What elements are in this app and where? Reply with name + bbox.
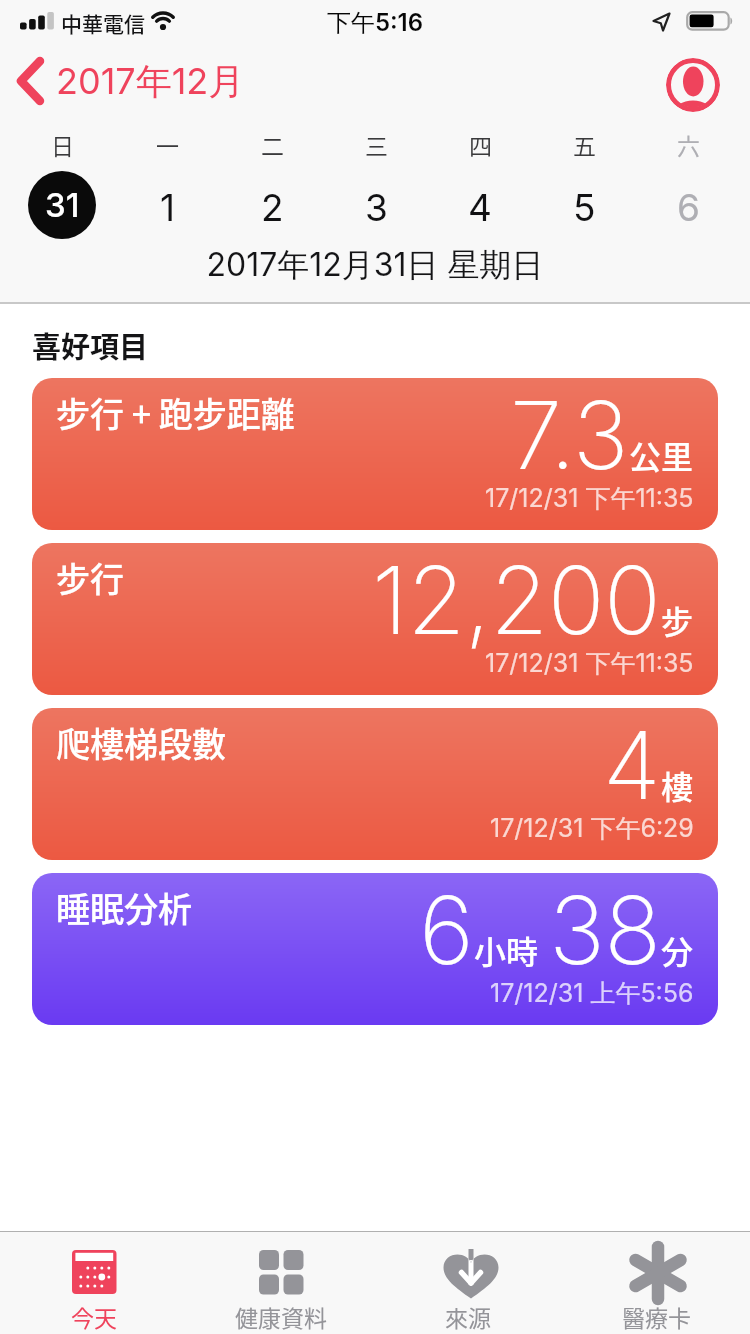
staticText: 四 xyxy=(469,128,492,161)
staticText: 31 xyxy=(45,185,80,225)
staticText: 步 xyxy=(661,597,694,643)
staticText: 17/12/31 下午6:29 xyxy=(490,813,694,845)
staticText: 公里 xyxy=(629,432,694,478)
button[interactable]: 31 xyxy=(28,171,96,239)
staticText: 六 xyxy=(677,128,700,161)
staticText: 分 xyxy=(661,927,694,973)
staticText: 五 xyxy=(573,128,596,161)
button[interactable]: 今天 xyxy=(0,1232,187,1334)
staticText: 6 xyxy=(419,873,474,987)
staticText: 6 xyxy=(677,185,700,230)
button[interactable]: 步行 + 跑步距離 xyxy=(32,378,718,530)
button[interactable] xyxy=(666,58,720,112)
staticText: 12,200 xyxy=(372,543,661,657)
staticText: 下午5:16 xyxy=(0,8,750,38)
staticText: 4 xyxy=(603,708,661,822)
staticText: 38 xyxy=(549,873,661,987)
staticText: 2017年12月 xyxy=(56,59,245,105)
staticText: 步行 + 跑步距離 xyxy=(56,388,295,437)
staticText: 樓 xyxy=(661,762,694,808)
button[interactable]: 爬樓梯段數 xyxy=(32,708,718,860)
staticText: 喜好項目 xyxy=(32,324,149,366)
button[interactable]: 來源 xyxy=(374,1232,562,1334)
button[interactable]: 步行 xyxy=(32,543,718,695)
staticText: 今天 xyxy=(71,1300,117,1333)
staticText: 三 xyxy=(365,128,388,161)
staticText: 3 xyxy=(365,185,388,230)
staticText: 2 xyxy=(261,185,284,230)
staticText: 睡眠分析 xyxy=(56,883,192,932)
button[interactable]: 2017年12月 xyxy=(14,44,245,120)
staticText: 日 xyxy=(51,128,74,161)
staticText: 步行 xyxy=(56,553,124,602)
staticText: 5 xyxy=(573,185,596,230)
staticText: 小時 xyxy=(474,927,539,973)
staticText: 7.3 xyxy=(510,378,629,492)
staticText: 來源 xyxy=(445,1300,491,1333)
staticText: 中華電信 xyxy=(61,8,145,38)
button[interactable]: 睡眠分析 xyxy=(32,873,718,1025)
staticText: 二 xyxy=(261,128,284,161)
staticText: 一 xyxy=(156,128,179,161)
staticText: 4 xyxy=(468,185,492,230)
staticText: 2017年12月31日 星期日 xyxy=(0,245,750,286)
button[interactable]: 健康資料 xyxy=(187,1232,374,1334)
staticText: 健康資料 xyxy=(235,1300,327,1333)
staticText: 17/12/31 上午5:56 xyxy=(490,978,694,1010)
staticText: 醫療卡 xyxy=(622,1300,691,1333)
staticText: 爬樓梯段數 xyxy=(56,718,226,767)
staticText: 1 xyxy=(160,185,176,230)
button[interactable]: 醫療卡 xyxy=(562,1232,750,1334)
staticText: 17/12/31 下午11:35 xyxy=(485,648,694,680)
staticText: 17/12/31 下午11:35 xyxy=(485,483,694,515)
